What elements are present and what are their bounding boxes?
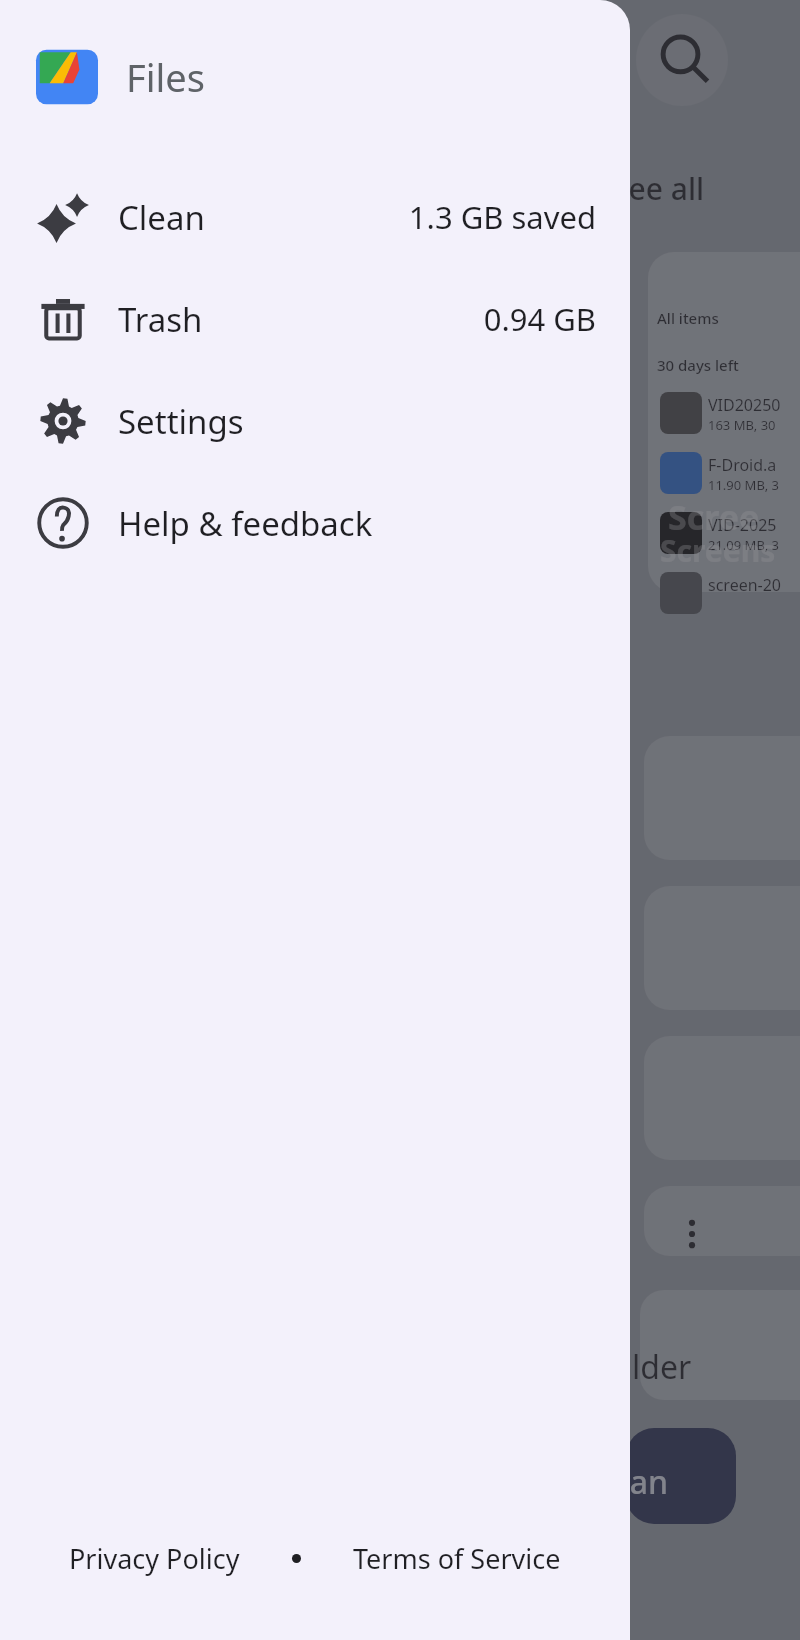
staticText: VID20250 xyxy=(708,394,781,416)
button[interactable]: Terms of Service xyxy=(347,1532,567,1585)
staticText: F-Droid.a xyxy=(708,454,777,476)
staticText: Settings xyxy=(118,399,244,444)
button[interactable]: Settings xyxy=(0,370,630,472)
button[interactable]: Privacy Policy xyxy=(63,1532,246,1585)
button[interactable] xyxy=(626,1428,736,1524)
staticText: Scree xyxy=(668,494,760,540)
staticText: Trash xyxy=(118,297,203,342)
staticText: Clean xyxy=(118,195,205,240)
staticText: lder xyxy=(632,1345,692,1389)
staticText: Screens xyxy=(660,530,776,571)
staticText: 11.90 MB, 3 xyxy=(708,476,780,494)
button[interactable]: Trash xyxy=(0,268,630,370)
staticText: Privacy Policy xyxy=(69,1540,240,1577)
staticText: screen-20 xyxy=(708,574,782,596)
button[interactable]: More options xyxy=(664,1206,720,1262)
button[interactable]: Clean xyxy=(0,166,630,268)
staticText: VID-2025 xyxy=(708,514,777,536)
staticText: 21.09 MB, 3 xyxy=(708,536,780,554)
staticText: See all xyxy=(612,168,705,209)
staticText: Help & feedback xyxy=(118,501,373,546)
staticText: can xyxy=(614,1460,669,1504)
staticText: 163 MB, 30 xyxy=(708,416,776,434)
staticText: All items xyxy=(657,308,719,328)
staticText: Terms of Service xyxy=(353,1540,561,1577)
staticText: 0.94 GB xyxy=(483,298,596,340)
staticText: Files xyxy=(126,51,205,103)
staticText: 30 days left xyxy=(657,355,739,375)
staticText: 1.3 GB saved xyxy=(408,196,596,238)
button[interactable]: Help & feedback xyxy=(0,472,630,574)
